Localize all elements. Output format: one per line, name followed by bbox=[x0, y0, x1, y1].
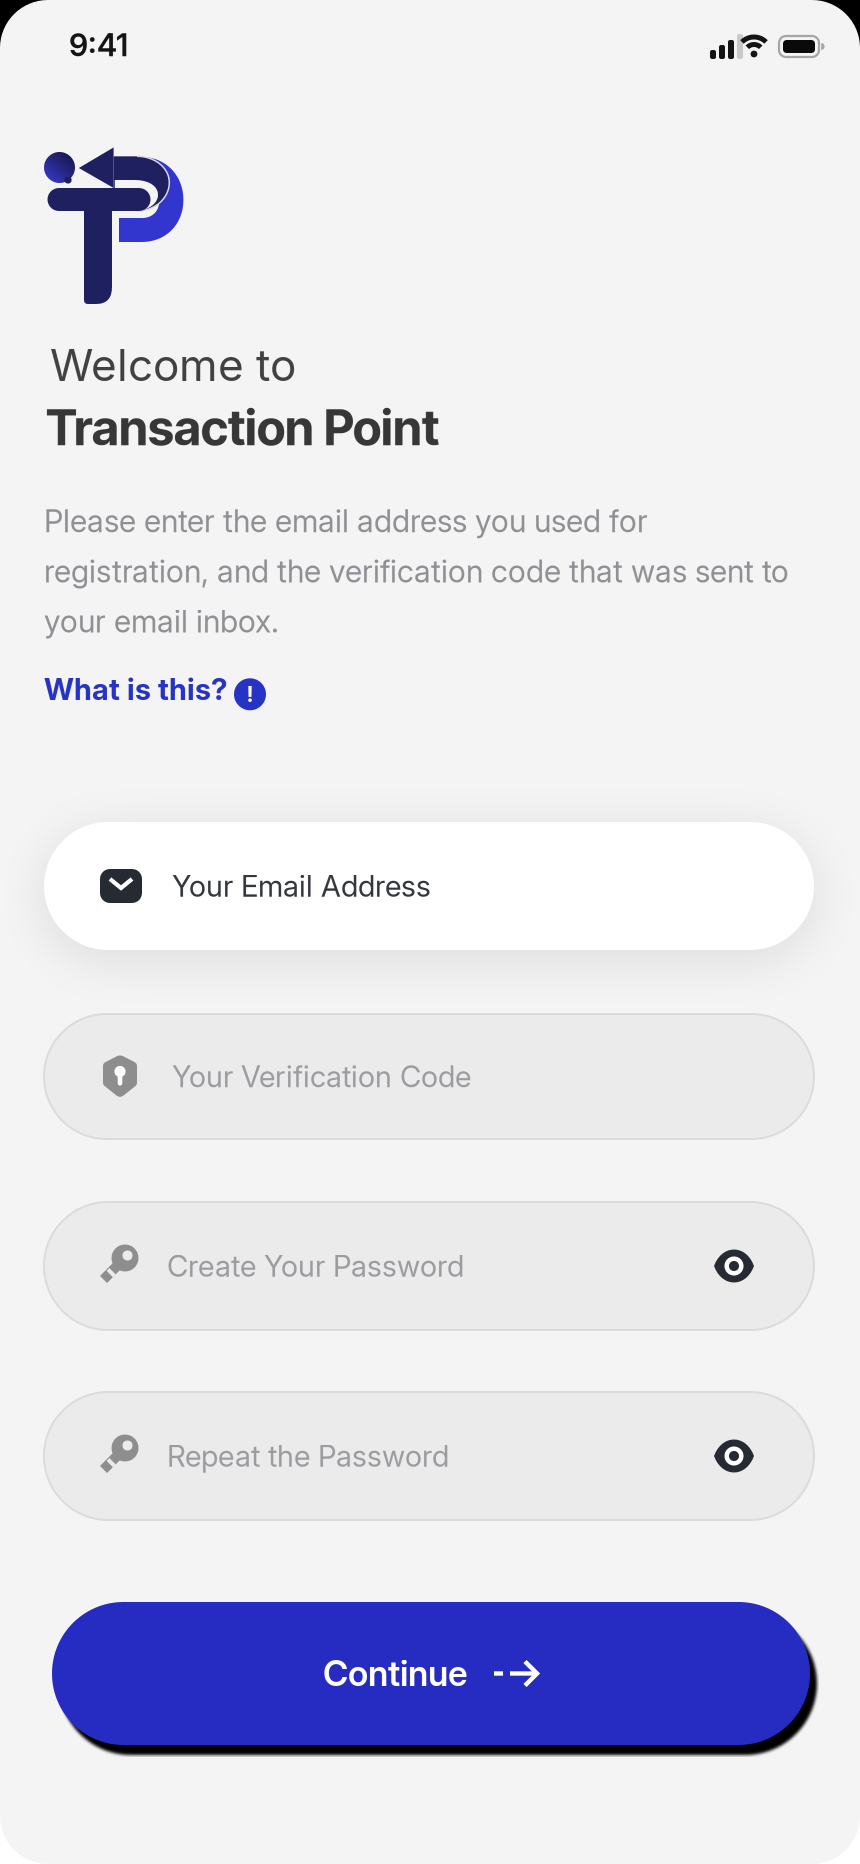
button[interactable]: Your Verification Code bbox=[44, 1014, 814, 1139]
staticText: Create Your Password bbox=[167, 1249, 464, 1283]
button[interactable]: Show password bbox=[714, 1439, 754, 1472]
staticText: Repeat the Password bbox=[167, 1439, 449, 1473]
staticText: Please enter the email address you used … bbox=[44, 503, 789, 639]
button[interactable]: Show password bbox=[714, 1249, 754, 1282]
staticText: 9:41 bbox=[69, 27, 128, 63]
staticText: What is this? bbox=[44, 672, 228, 707]
button[interactable]: Create Your Password bbox=[44, 1202, 814, 1330]
staticText: Continue bbox=[323, 1653, 468, 1694]
button[interactable]: What is this? bbox=[44, 672, 266, 707]
staticText: ! bbox=[246, 682, 253, 707]
staticText: Welcome to bbox=[50, 339, 296, 391]
button[interactable]: Your Email Address bbox=[44, 822, 814, 950]
staticText: Transaction Point bbox=[46, 398, 439, 457]
button[interactable]: Continue bbox=[52, 1602, 810, 1745]
staticText: Your Verification Code bbox=[172, 1059, 471, 1094]
staticText: Your Email Address bbox=[172, 869, 431, 903]
button[interactable]: Repeat the Password bbox=[44, 1392, 814, 1520]
